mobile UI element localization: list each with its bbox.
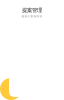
staticText: 提案管理 <box>22 7 42 14</box>
staticText: 最新の更新内容 <box>21 15 42 18</box>
